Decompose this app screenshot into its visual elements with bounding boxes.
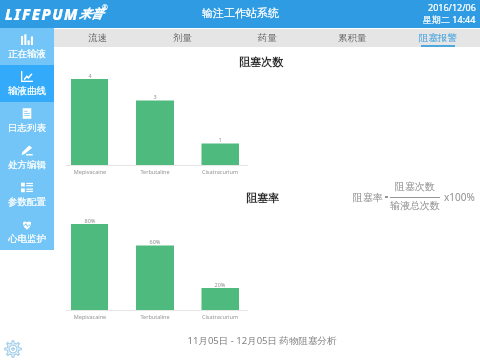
staticText: 80%	[70, 217, 110, 224]
staticText: ®	[102, 3, 108, 13]
staticText: 阻塞报警	[419, 32, 457, 44]
staticText: 3	[135, 93, 175, 100]
button[interactable]: 剂量	[140, 29, 225, 47]
staticText: LIFEPUM	[5, 4, 79, 24]
staticText: 参数配置	[8, 196, 46, 208]
staticText: Cisatracurium	[190, 168, 250, 175]
staticText: 1	[200, 136, 240, 143]
staticText: Terbutaline	[125, 168, 185, 175]
staticText: 4	[70, 72, 110, 79]
staticText: Mepivacaine	[60, 168, 120, 175]
staticText: 剂量	[173, 32, 192, 44]
button[interactable]: Settings	[4, 340, 22, 358]
staticText: 心电监护	[8, 233, 46, 245]
staticText: 来普	[79, 6, 103, 21]
staticText: 处方编辑	[8, 159, 46, 171]
button[interactable]: 药量	[225, 29, 310, 47]
button[interactable]: 正在输液	[0, 28, 54, 65]
staticText: 阻塞率	[353, 191, 383, 204]
staticText: x100%	[444, 190, 475, 204]
button[interactable]: 累积量	[310, 29, 395, 47]
staticText: Terbutaline	[125, 313, 185, 320]
staticText: 累积量	[338, 32, 367, 44]
staticText: 阻塞率	[246, 191, 279, 205]
button[interactable]: 日志列表	[0, 102, 54, 139]
staticText: 2016/12/06	[428, 1, 476, 13]
button[interactable]: 处方编辑	[0, 139, 54, 176]
staticText: 药量	[258, 32, 277, 44]
staticText: 输注工作站系统	[202, 6, 279, 20]
staticText: 输液曲线	[8, 85, 46, 97]
staticText: 阻塞次数	[239, 55, 283, 69]
staticText: 流速	[88, 32, 107, 44]
staticText: Mepivacaine	[60, 313, 120, 320]
staticText: 星期二 14:44	[423, 13, 476, 25]
staticText: 阻塞次数	[390, 180, 440, 193]
staticText: 60%	[135, 238, 175, 245]
button[interactable]: 参数配置	[0, 176, 54, 213]
staticText: 正在输液	[8, 48, 46, 60]
button[interactable]: 输液曲线	[0, 65, 54, 102]
button[interactable]: 流速	[54, 29, 140, 47]
staticText: 输液总次数	[390, 199, 440, 212]
staticText: 日志列表	[8, 122, 46, 134]
button[interactable]: 阻塞报警	[395, 29, 480, 47]
staticText: 20%	[200, 281, 240, 288]
button[interactable]: 心电监护	[0, 213, 54, 250]
staticText: 11月05日 - 12月05日 药物阻塞分析	[152, 334, 372, 347]
staticText: Cisatracurium	[190, 313, 250, 320]
